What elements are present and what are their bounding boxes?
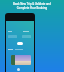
button[interactable]: [11, 55, 31, 65]
button[interactable]: [17, 42, 23, 45]
button[interactable]: Action: [17, 68, 20, 71]
staticText: Book New Trip & Validate and Complete Yo…: [13, 2, 51, 9]
